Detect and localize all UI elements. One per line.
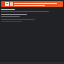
button[interactable] <box>0 14 64 17</box>
button[interactable] <box>0 9 64 12</box>
button[interactable] <box>0 19 64 22</box>
button[interactable]: Featured story <box>1 1 63 7</box>
